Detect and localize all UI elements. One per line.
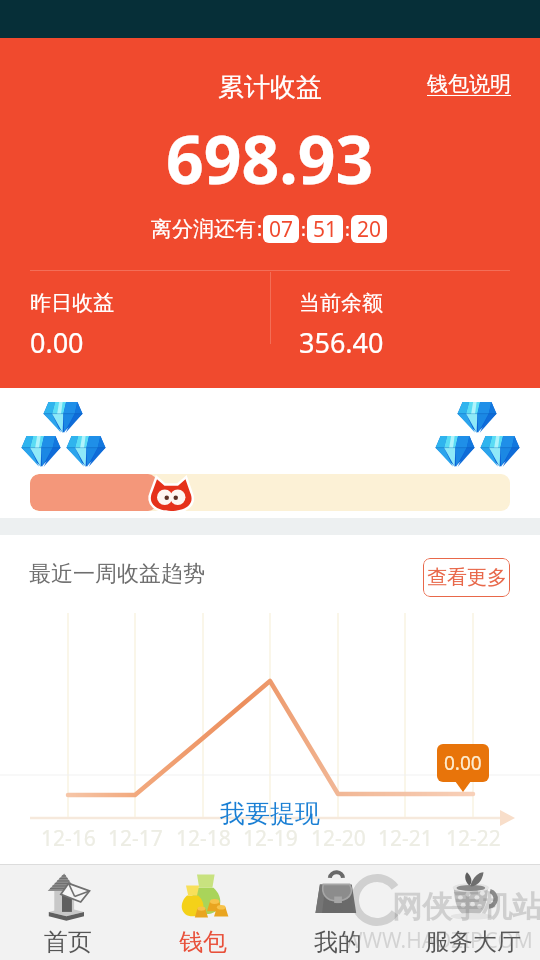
staticText: 12-21 — [378, 824, 433, 853]
staticText: 12-19 — [243, 824, 298, 853]
button[interactable]: 钱包说明 — [427, 71, 511, 97]
button[interactable]: 查看更多 — [423, 558, 510, 597]
staticText: 07 — [269, 215, 294, 243]
staticText: 钱包 — [179, 927, 227, 957]
staticText: 服务大厅 — [425, 927, 521, 957]
staticText: WWW.HAOZIP.COM — [343, 926, 533, 955]
staticText: 0.00 — [444, 750, 482, 776]
button[interactable]: 我要提现 — [220, 798, 320, 829]
staticText: 查看更多 — [427, 565, 507, 590]
staticText: 累计收益 — [218, 71, 322, 104]
staticText: : — [301, 217, 306, 242]
staticText: 12-17 — [108, 824, 163, 853]
button[interactable]: 钱包 — [135, 864, 270, 960]
staticText: 356.40 — [299, 324, 384, 361]
staticText: 首页 — [44, 927, 92, 957]
staticText: 12-18 — [176, 824, 231, 853]
button[interactable]: 首页 — [0, 864, 135, 960]
button[interactable]: 服务大厅 — [405, 864, 540, 960]
staticText: 12-22 — [446, 824, 501, 853]
staticText: 最近一周收益趋势 — [29, 560, 205, 588]
staticText: 我的 — [314, 927, 362, 957]
staticText: 20 — [357, 215, 382, 243]
staticText: 0.00 — [30, 324, 84, 361]
button[interactable]: 我的 — [270, 864, 405, 960]
staticText: 12-20 — [311, 824, 366, 853]
staticText: : — [257, 216, 263, 242]
staticText: 昨日收益 — [30, 290, 114, 316]
staticText: : — [345, 217, 350, 242]
staticText: 钱包说明 — [427, 71, 511, 97]
staticText: 我要提现 — [220, 798, 320, 829]
staticText: 当前余额 — [299, 290, 383, 316]
staticText: 12-16 — [41, 824, 96, 853]
staticText: 698.93 — [166, 113, 374, 203]
staticText: 网侠手机站 — [392, 888, 540, 926]
staticText: 51 — [313, 215, 338, 243]
staticText: 离分润还有 — [151, 216, 256, 242]
